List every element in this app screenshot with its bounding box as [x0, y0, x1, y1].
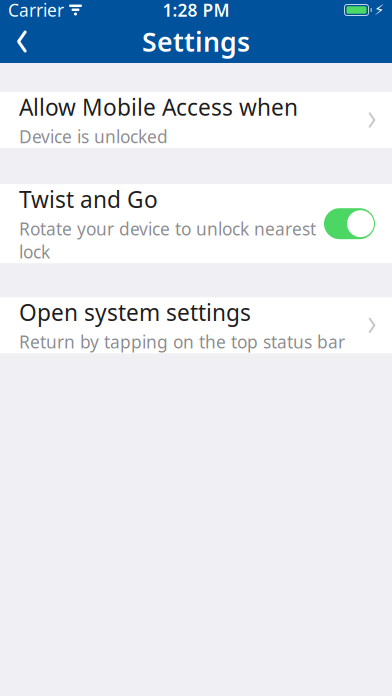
- button[interactable]: Allow Mobile Access when: [0, 92, 392, 148]
- staticText: Return by tapping on the top status bar: [19, 330, 345, 353]
- staticText: Twist and Go: [19, 184, 158, 214]
- staticText: Open system settings: [19, 297, 251, 327]
- staticText: Rotate your device to unlock nearest loc…: [19, 217, 316, 263]
- button[interactable]: Open system settings: [0, 297, 392, 353]
- staticText: Device is unlocked: [19, 125, 168, 148]
- staticText: Settings: [142, 24, 250, 59]
- staticText: 1:28 PM: [162, 0, 229, 21]
- staticText: Allow Mobile Access when: [19, 92, 298, 122]
- staticText: Carrier: [8, 0, 64, 21]
- button[interactable]: Back: [0, 19, 44, 63]
- button[interactable]: Twist and Go: [324, 208, 375, 239]
- staticText: ⚡︎: [374, 2, 384, 18]
